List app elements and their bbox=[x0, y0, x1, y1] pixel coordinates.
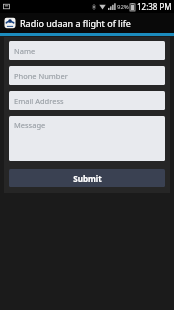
staticText: Radio udaan a flight of life bbox=[20, 17, 131, 29]
button[interactable]: Message bbox=[9, 116, 165, 161]
button[interactable]: Email Address bbox=[9, 91, 165, 110]
button[interactable]: Name bbox=[9, 41, 165, 60]
staticText: 92% bbox=[117, 3, 129, 11]
staticText: Message bbox=[14, 120, 46, 130]
staticText: 12:38 PM bbox=[137, 1, 172, 12]
button[interactable]: Phone Number bbox=[9, 66, 165, 85]
staticText: Phone Number bbox=[14, 71, 68, 81]
staticText: Submit bbox=[73, 173, 102, 184]
button[interactable]: Submit bbox=[9, 169, 165, 187]
staticText: Email Address bbox=[14, 96, 64, 106]
staticText: Name bbox=[14, 46, 36, 56]
